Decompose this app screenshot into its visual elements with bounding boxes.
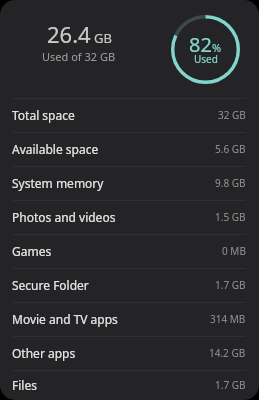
staticText: 32 GB — [218, 108, 246, 122]
button[interactable]: System memory — [0, 166, 259, 200]
staticText: Photos and videos — [12, 209, 116, 225]
staticText: Games — [12, 243, 52, 259]
button[interactable]: Movie and TV apps — [0, 302, 259, 336]
staticText: Available space — [12, 141, 99, 157]
staticText: Movie and TV apps — [12, 311, 118, 327]
button[interactable]: Available space — [0, 132, 259, 166]
button[interactable]: Files — [0, 370, 259, 400]
staticText: 14.2 GB — [209, 346, 246, 360]
staticText: 82% — [189, 31, 222, 58]
button[interactable]: Total space — [0, 98, 259, 132]
button[interactable]: Other apps — [0, 336, 259, 370]
staticText: Used — [194, 52, 218, 66]
staticText: 0 MB — [222, 244, 246, 258]
staticText: Used of 32 GB — [42, 49, 116, 64]
staticText: Secure Folder — [12, 277, 89, 293]
staticText: 1.7 GB — [215, 378, 246, 392]
staticText: 314 MB — [210, 312, 246, 326]
button[interactable]: Photos and videos — [0, 200, 259, 234]
staticText: 1.7 GB — [215, 278, 246, 292]
staticText: 1.5 GB — [215, 210, 246, 224]
staticText: Total space — [12, 107, 75, 123]
staticText: Files — [12, 377, 37, 393]
staticText: 26.4 GB — [47, 19, 112, 49]
staticText: 9.8 GB — [215, 176, 246, 190]
button[interactable]: Games — [0, 234, 259, 268]
button[interactable]: Secure Folder — [0, 268, 259, 302]
staticText: Other apps — [12, 345, 76, 361]
staticText: 5.6 GB — [215, 142, 246, 156]
staticText: System memory — [12, 175, 104, 191]
